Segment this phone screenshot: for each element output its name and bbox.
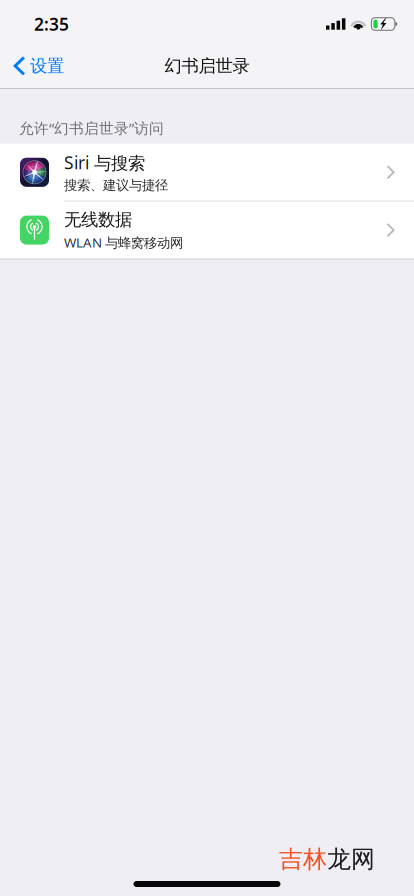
staticText: WLAN 与蜂窝移动网 [64, 233, 183, 251]
staticText: 无线数据 [64, 209, 132, 230]
staticText: 吉林 [279, 844, 327, 874]
staticText: 幻书启世录 [164, 55, 249, 77]
staticText: 2:35 [34, 12, 69, 35]
button[interactable]: Siri 与搜索 [0, 144, 414, 201]
staticText: 搜索、建议与捷径 [64, 177, 168, 194]
button[interactable]: 无线数据 [0, 202, 414, 259]
button[interactable]: 设置 [0, 44, 74, 88]
staticText: 龙网 [327, 844, 375, 874]
staticText: Siri 与搜索 [64, 151, 145, 174]
staticText: 设置 [30, 55, 64, 77]
staticText: 允许“幻书启世录”访问 [19, 118, 164, 138]
